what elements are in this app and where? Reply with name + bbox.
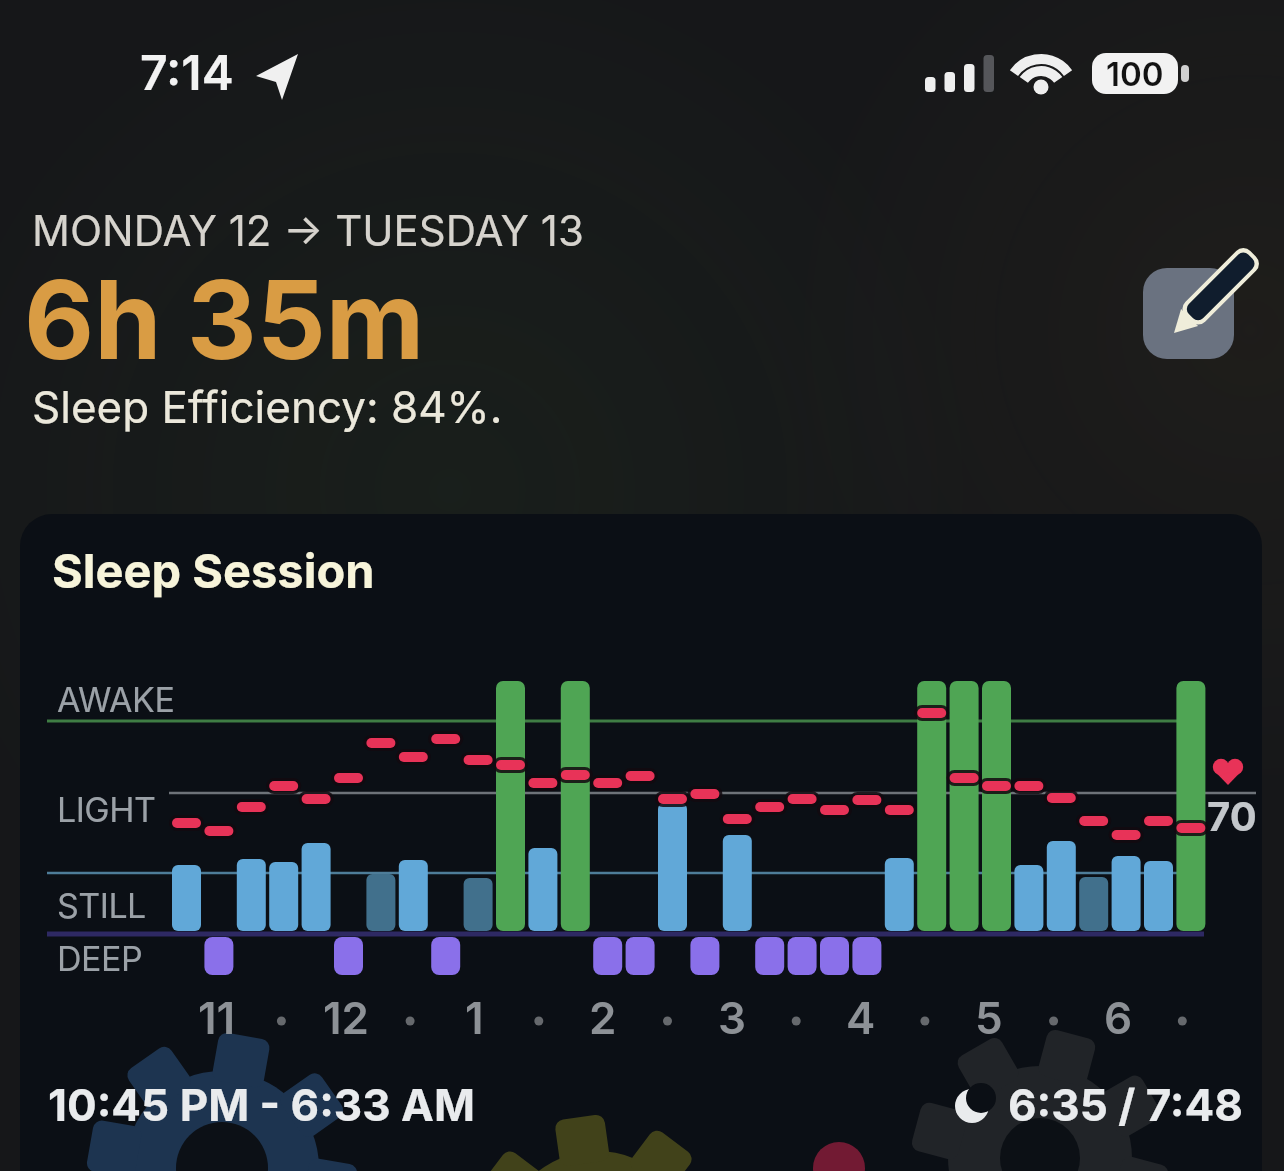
staticText: 5 bbox=[975, 991, 1003, 1044]
staticText: 100 bbox=[1106, 54, 1164, 94]
staticText: STILL bbox=[57, 885, 146, 926]
staticText: 10:45 PM - 6:33 AM bbox=[48, 1078, 475, 1131]
staticText: 1 bbox=[465, 991, 484, 1044]
staticText: 6 bbox=[1104, 991, 1133, 1044]
staticText: MONDAY 12 → TUESDAY 13 bbox=[32, 205, 584, 256]
staticText: 4 bbox=[846, 991, 876, 1044]
staticText: 3 bbox=[718, 991, 746, 1044]
staticText: Sleep Session bbox=[52, 542, 375, 599]
staticText: 12 bbox=[323, 991, 370, 1044]
staticText: 2 bbox=[589, 991, 617, 1044]
staticText: AWAKE bbox=[57, 679, 175, 720]
staticText: 7:14 bbox=[140, 43, 234, 101]
staticText: DEEP bbox=[57, 938, 143, 979]
staticText: Sleep Efficiency: 84%. bbox=[32, 380, 503, 433]
staticText: 6:35 / 7:48 bbox=[1008, 1078, 1243, 1131]
staticText: 11 bbox=[198, 991, 236, 1044]
button[interactable] bbox=[20, 514, 1262, 1171]
staticText: LIGHT bbox=[57, 789, 156, 830]
staticText: 70 bbox=[1207, 792, 1257, 840]
staticText: 6h 35m bbox=[24, 254, 425, 385]
button[interactable] bbox=[1143, 268, 1234, 359]
